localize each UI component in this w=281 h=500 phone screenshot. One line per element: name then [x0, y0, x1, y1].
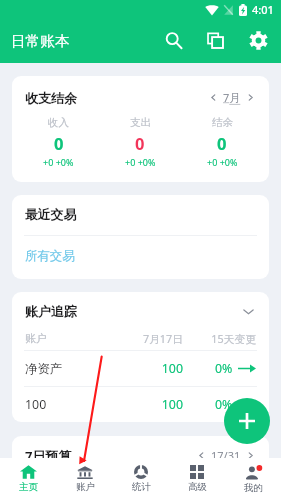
staticText: 收支结余: [25, 90, 77, 106]
staticText: 日常账本: [11, 32, 70, 50]
staticText: 账户: [76, 481, 95, 493]
button[interactable]: 我的: [225, 458, 281, 500]
staticText: 100: [25, 396, 110, 413]
button[interactable]: Previous period: [192, 446, 211, 465]
staticText: 100: [110, 360, 183, 377]
button[interactable]: Settings: [237, 19, 280, 62]
button[interactable]: Search: [153, 20, 194, 61]
staticText: 支出: [130, 116, 151, 129]
button[interactable]: 100: [12, 386, 269, 422]
staticText: 账户: [25, 332, 110, 346]
staticText: 0: [217, 132, 227, 154]
button[interactable]: 所有交易: [12, 236, 269, 279]
staticText: 0: [54, 132, 64, 154]
staticText: 收入: [48, 116, 69, 129]
staticText: 0: [135, 132, 145, 154]
button[interactable]: 主页: [0, 458, 57, 500]
staticText: 100: [110, 396, 183, 413]
staticText: 主页: [19, 481, 38, 493]
button[interactable]: Previous month: [204, 88, 223, 107]
staticText: 净资产: [25, 361, 110, 377]
staticText: 17/31: [211, 448, 241, 463]
button[interactable]: 高级: [169, 458, 225, 500]
button[interactable]: Add: [224, 398, 270, 444]
staticText: 4:01: [252, 2, 274, 17]
staticText: +0 +0%: [125, 156, 156, 168]
staticText: 最近交易: [25, 207, 77, 223]
staticText: 7月: [223, 90, 241, 105]
staticText: 结余: [212, 116, 233, 129]
staticText: 所有交易: [25, 248, 75, 264]
staticText: 高级: [188, 481, 207, 493]
staticText: 7月17日: [110, 331, 183, 346]
staticText: +0 +0%: [207, 156, 238, 168]
staticText: 0%: [215, 360, 233, 377]
staticText: 7日预算: [25, 447, 72, 465]
button[interactable]: 账户: [57, 458, 113, 500]
staticText: +0 +0%: [43, 156, 74, 168]
staticText: 0%: [215, 396, 233, 413]
button[interactable]: 净资产: [12, 350, 269, 386]
button[interactable]: Next month: [241, 88, 260, 107]
button[interactable]: Collapse: [239, 302, 257, 320]
staticText: 我的: [244, 482, 263, 494]
staticText: 账户追踪: [25, 303, 77, 319]
button[interactable]: 统计: [113, 458, 169, 500]
button[interactable]: Multi window: [194, 19, 237, 62]
button[interactable]: Next period: [241, 446, 260, 465]
staticText: 统计: [132, 481, 151, 493]
staticText: 15天变更: [183, 331, 256, 346]
